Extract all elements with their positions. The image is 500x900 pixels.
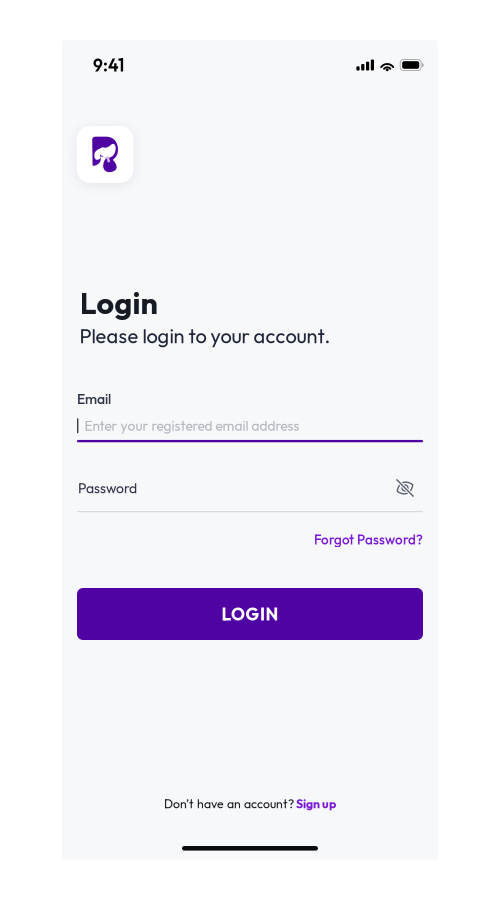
staticText: Password [78,479,137,497]
staticText: Sign up [296,796,336,811]
staticText: Email [77,390,111,408]
button[interactable]: Don’t have an account? [164,796,336,811]
staticText: Don’t have an account? [164,796,294,811]
staticText: Forgot Password? [314,531,423,548]
staticText: 9:41 [93,54,124,76]
staticText: LOGIN [221,603,279,625]
button[interactable]: App logo [77,126,134,183]
button[interactable]: Forgot Password? [314,531,423,548]
button[interactable]: LOGIN [77,588,423,640]
button[interactable]: Show password [396,479,423,497]
staticText: Enter your registered email address [84,417,299,434]
staticText: Login [79,283,157,322]
staticText: Please login to your account. [79,323,330,348]
